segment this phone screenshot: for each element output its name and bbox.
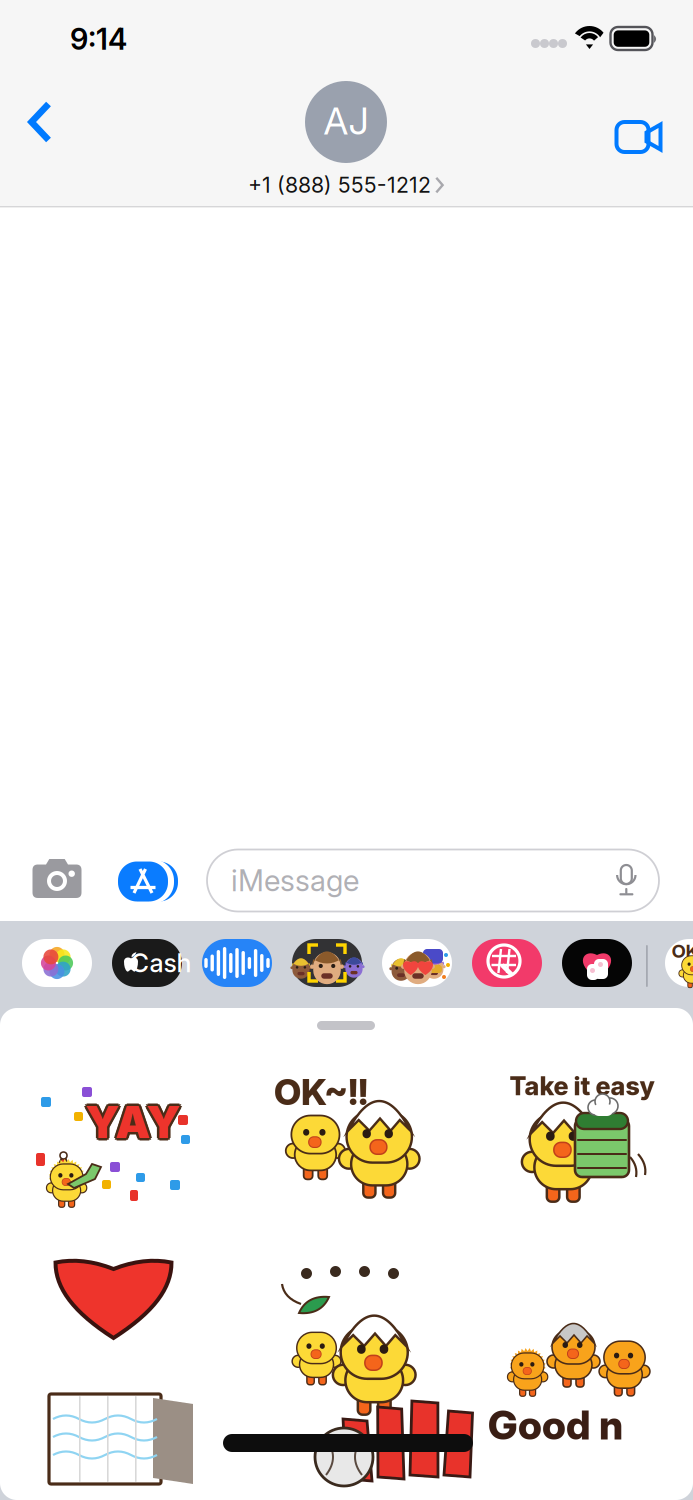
button[interactable]: FaceTime	[0, 72, 76, 136]
staticText: YAY	[85, 1098, 180, 1151]
staticText: YAY	[88, 1095, 183, 1149]
button[interactable]: Camera	[0, 839, 86, 905]
staticText: YAY	[85, 1093, 180, 1146]
button[interactable]: Audio Message	[0, 921, 70, 969]
staticText: Take it easy	[509, 1071, 654, 1101]
staticText: Cash	[130, 948, 191, 978]
button[interactable]: OK sticker	[0, 1008, 231, 1208]
staticText: OK~!!	[274, 1070, 368, 1114]
staticText: Good n	[488, 1401, 623, 1449]
staticText: AJ	[323, 98, 368, 144]
staticText: YAY	[87, 1093, 182, 1147]
staticText: 9:14	[70, 21, 127, 57]
button[interactable]: Memoji	[0, 921, 70, 969]
button[interactable]: YAY sticker	[0, 1008, 231, 1208]
button[interactable]: Apple Cash	[0, 921, 70, 969]
button[interactable]: Waiting sticker	[0, 1008, 231, 1208]
button[interactable]: Heart sticker	[0, 1008, 231, 1208]
button[interactable]: Trio sticker	[0, 1008, 231, 1208]
staticText: YAY	[84, 1093, 179, 1147]
button[interactable]: Baseball sticker	[0, 1008, 231, 1068]
staticText: YAY	[84, 1097, 179, 1150]
button[interactable]: Photo Booth	[0, 921, 70, 969]
button[interactable]: Apps	[0, 839, 84, 897]
button[interactable]: Good night sticker	[0, 1008, 231, 1068]
button[interactable]: Notebook sticker	[0, 1008, 231, 1068]
staticText: +1 (888) 555-1212	[248, 172, 431, 198]
button[interactable]: Digital Touch	[0, 921, 70, 969]
button[interactable]: Message field	[0, 839, 452, 901]
button[interactable]: Images	[0, 921, 70, 969]
button[interactable]: Back	[0, 72, 68, 136]
staticText: iMessage	[231, 863, 359, 898]
button[interactable]: Take it easy sticker	[0, 1008, 231, 1208]
staticText: YAY	[83, 1095, 178, 1149]
button[interactable]: Sally Stickers	[0, 921, 70, 969]
button[interactable]: Photos	[0, 921, 70, 969]
staticText: OK~	[671, 940, 693, 962]
staticText: YAY	[87, 1097, 182, 1150]
staticText: YAY	[85, 1095, 180, 1149]
